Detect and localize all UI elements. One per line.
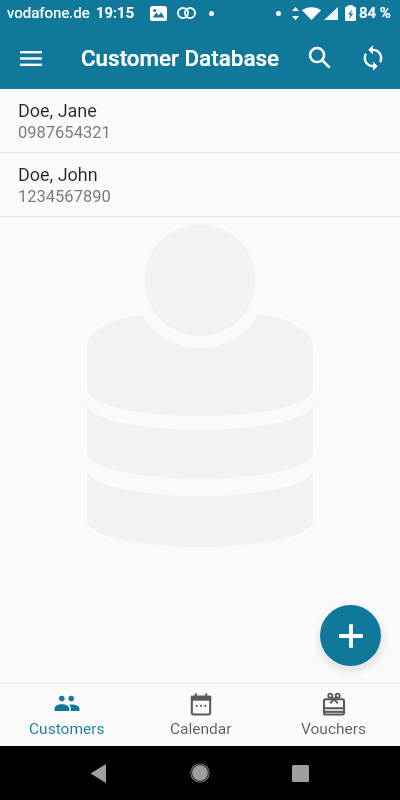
staticText: vodafone.de bbox=[7, 4, 90, 22]
button[interactable]: Vouchers bbox=[267, 684, 400, 746]
button[interactable]: Recent apps bbox=[276, 749, 324, 797]
button[interactable]: Back bbox=[74, 749, 122, 797]
staticText: Customers bbox=[29, 720, 105, 738]
staticText: Doe, John bbox=[18, 164, 98, 185]
staticText: 0987654321 bbox=[18, 123, 111, 142]
staticText: Doe, Jane bbox=[18, 100, 97, 121]
button[interactable]: Search bbox=[298, 36, 342, 80]
button[interactable]: Open navigation menu bbox=[7, 34, 55, 82]
staticText: Calendar bbox=[170, 720, 232, 738]
button[interactable]: Synchronise bbox=[351, 36, 395, 80]
button[interactable]: Calendar bbox=[134, 684, 267, 746]
staticText: 84 % bbox=[359, 4, 391, 22]
button[interactable]: Add customer bbox=[320, 605, 381, 666]
button[interactable]: Doe, John bbox=[0, 153, 400, 217]
staticText: 19:15 bbox=[96, 4, 135, 22]
button[interactable]: Customers bbox=[0, 684, 134, 746]
staticText: Customer Database bbox=[81, 45, 280, 71]
button[interactable]: Doe, Jane bbox=[0, 89, 400, 153]
staticText: Vouchers bbox=[301, 720, 367, 738]
button[interactable]: Home bbox=[176, 749, 224, 797]
staticText: 1234567890 bbox=[18, 187, 111, 206]
